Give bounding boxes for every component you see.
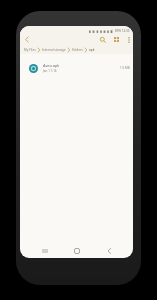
button[interactable]: Folders — [72, 48, 83, 52]
button[interactable]: My Files — [24, 48, 36, 52]
button[interactable]: Internal storage — [42, 48, 66, 52]
button[interactable] — [98, 35, 107, 44]
staticText: Aveo.apk — [43, 63, 60, 68]
staticText: 1.5 MB — [120, 66, 130, 70]
staticText: 89% 12:33 — [115, 29, 130, 33]
button[interactable] — [22, 35, 31, 44]
button[interactable] — [93, 244, 125, 258]
button[interactable] — [112, 35, 121, 44]
button[interactable] — [61, 244, 93, 258]
staticText: Jan 1 1:14 — [43, 69, 57, 73]
button[interactable]: Aveo.apk — [20, 58, 133, 78]
button[interactable] — [28, 244, 61, 258]
button[interactable]: apk — [89, 48, 95, 52]
button[interactable] — [124, 35, 133, 44]
